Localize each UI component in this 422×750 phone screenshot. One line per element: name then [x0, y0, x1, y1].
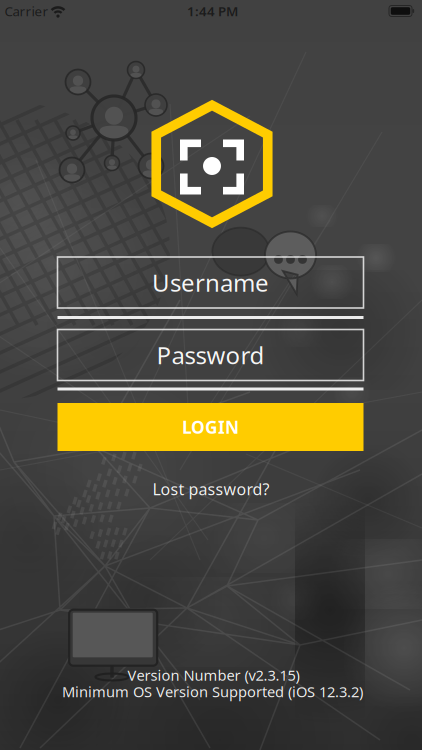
staticText: Username: [152, 267, 269, 298]
staticText: Password: [156, 339, 264, 371]
staticText: Minimum OS Version Supported (iOS 12.3.2…: [62, 682, 363, 701]
button[interactable]: Password: [57, 329, 363, 380]
button[interactable]: Lost password?: [142, 473, 279, 505]
button[interactable]: Username: [57, 257, 363, 308]
staticText: 1:44 PM: [187, 2, 238, 20]
staticText: LOGIN: [182, 415, 239, 438]
staticText: Lost password?: [152, 478, 269, 500]
button[interactable]: LOGIN: [57, 403, 363, 451]
staticText: Carrier: [4, 2, 48, 20]
staticText: Version Number (v2.3.15): [127, 665, 299, 685]
